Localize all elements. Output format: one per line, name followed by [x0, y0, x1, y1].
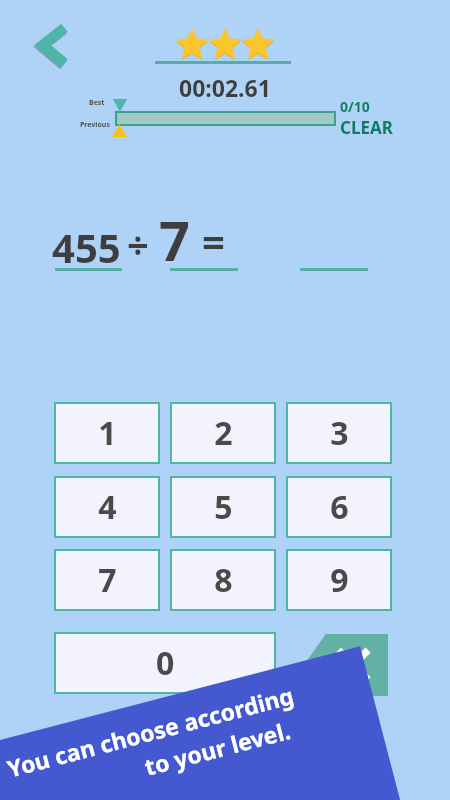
staticText: 3	[330, 411, 349, 455]
staticText: 0	[156, 641, 175, 685]
staticText: Best	[89, 98, 105, 108]
button[interactable]: Delete	[304, 634, 388, 696]
button[interactable]: 8	[170, 549, 276, 611]
button[interactable]: Back	[26, 22, 78, 70]
staticText: 7	[98, 558, 117, 602]
button[interactable]: 1	[54, 402, 160, 464]
staticText: 5	[214, 485, 233, 529]
button[interactable]: You can choose according	[0, 646, 405, 800]
button[interactable]: 2	[170, 402, 276, 464]
button[interactable]: 6	[286, 476, 392, 538]
staticText: ÷	[127, 218, 149, 270]
staticText: 2	[214, 411, 233, 455]
button[interactable]: 4	[54, 476, 160, 538]
staticText: 8	[214, 558, 233, 602]
button[interactable]: 9	[286, 549, 392, 611]
staticText: CLEAR	[340, 116, 393, 139]
staticText: 00:02.61	[179, 72, 271, 103]
button[interactable]: 3	[286, 402, 392, 464]
staticText: You can choose according	[4, 679, 297, 783]
staticText: 7	[159, 203, 190, 277]
button[interactable]: 7	[54, 549, 160, 611]
staticText: 1	[98, 411, 117, 455]
staticText: to your level.	[141, 714, 294, 782]
staticText: 4	[98, 485, 117, 529]
staticText: 455	[52, 220, 121, 274]
staticText: 9	[330, 558, 349, 602]
staticText: =	[202, 214, 225, 268]
staticText: 0/10	[340, 97, 370, 116]
staticText: Previous	[80, 120, 110, 130]
staticText: 6	[330, 485, 349, 529]
button[interactable]: 0	[54, 632, 276, 694]
button[interactable]: 5	[170, 476, 276, 538]
